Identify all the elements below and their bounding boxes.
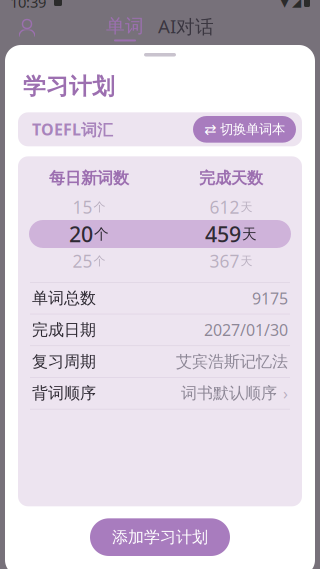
staticText: 367 [209,249,239,272]
button[interactable]: 单词 [106,14,144,41]
button[interactable]: Profile [10,11,44,45]
staticText: 复习周期 [32,352,96,371]
staticText: 天 [242,225,257,243]
staticText: 9175 [252,288,288,309]
button[interactable]: 背词顺序 [30,378,290,409]
staticText: 天 [240,254,252,268]
staticText: 612 [209,195,239,218]
staticText: 459 [205,220,241,248]
staticText: 艾宾浩斯记忆法 [176,352,288,371]
button[interactable]: 复习周期 [30,346,290,377]
staticText: ▼ [280,0,289,9]
staticText: › [283,383,288,404]
staticText: 单词 [106,14,144,37]
staticText: AI对话 [158,14,214,38]
staticText: ⇄ [204,121,216,138]
button[interactable]: AI对话 [158,14,214,42]
staticText: 20 [69,220,93,248]
staticText: 15 [72,195,92,218]
staticText: 个 [94,225,109,243]
staticText: TOEFL词汇 [32,119,113,140]
staticText: 完成日期 [32,320,96,340]
staticText: 10:39 [10,0,46,12]
staticText: 切换单词本 [220,121,285,138]
button[interactable]: 单词总数 [30,283,290,314]
staticText: 背词顺序 [32,383,96,403]
staticText: 2027/01/30 [204,319,288,340]
staticText: 每日新词数 [49,168,129,188]
button[interactable]: ⇄ [193,116,296,143]
staticText: 词书默认顺序 [181,383,277,403]
staticText: 25 [72,249,92,272]
staticText: 个 [93,200,105,214]
button[interactable]: 添加学习计划 [90,518,230,556]
staticText: 单词总数 [32,288,96,308]
staticText: 个 [93,254,105,268]
button[interactable]: 完成日期 [30,314,290,345]
staticText: 完成天数 [199,168,263,188]
staticText: ◢ [292,0,301,9]
staticText: 学习计划 [23,72,115,100]
staticText: 天 [240,200,252,214]
staticText: 添加学习计划 [112,527,208,547]
